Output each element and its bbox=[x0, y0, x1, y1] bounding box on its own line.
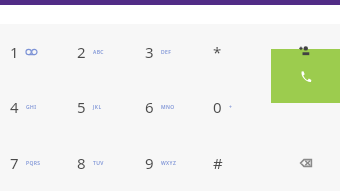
button[interactable]: 4 bbox=[0, 79, 67, 134]
button[interactable]: Call bbox=[271, 49, 340, 103]
staticText: # bbox=[213, 153, 223, 173]
staticText: GHI bbox=[26, 104, 37, 111]
staticText: 8 bbox=[77, 153, 86, 173]
button[interactable]: 1 bbox=[0, 24, 67, 79]
staticText: WXYZ bbox=[161, 160, 177, 167]
staticText: * bbox=[213, 42, 222, 62]
staticText: 3 bbox=[145, 42, 154, 62]
staticText: 5 bbox=[77, 97, 86, 117]
staticText: ABC bbox=[93, 49, 104, 56]
staticText: DEF bbox=[161, 49, 172, 56]
button[interactable]: 5 bbox=[67, 79, 135, 134]
staticText: JKL bbox=[93, 104, 102, 111]
button[interactable]: 9 bbox=[135, 134, 203, 191]
staticText: 4 bbox=[10, 97, 19, 117]
staticText: 7 bbox=[10, 153, 19, 173]
button[interactable]: 2 bbox=[67, 24, 135, 79]
staticText: 9 bbox=[145, 153, 154, 173]
staticText: MNO bbox=[161, 104, 175, 111]
staticText: 2 bbox=[77, 42, 86, 62]
button[interactable]: 8 bbox=[67, 134, 135, 191]
staticText: + bbox=[229, 104, 233, 111]
button[interactable]: 6 bbox=[135, 79, 203, 134]
staticText: 0 bbox=[213, 97, 222, 117]
button[interactable]: 7 bbox=[0, 134, 67, 191]
button[interactable]: 3 bbox=[135, 24, 203, 79]
button[interactable]: 0 bbox=[203, 79, 271, 134]
staticText: 6 bbox=[145, 97, 154, 117]
button[interactable]: # bbox=[203, 134, 271, 191]
staticText: 1 bbox=[10, 42, 19, 62]
button[interactable]: * bbox=[203, 24, 271, 79]
button[interactable] bbox=[271, 79, 340, 134]
staticText: PQRS bbox=[26, 160, 41, 167]
button[interactable]: Backspace bbox=[271, 134, 340, 191]
staticText: TUV bbox=[93, 160, 104, 167]
button[interactable]: Add contact bbox=[271, 24, 340, 79]
